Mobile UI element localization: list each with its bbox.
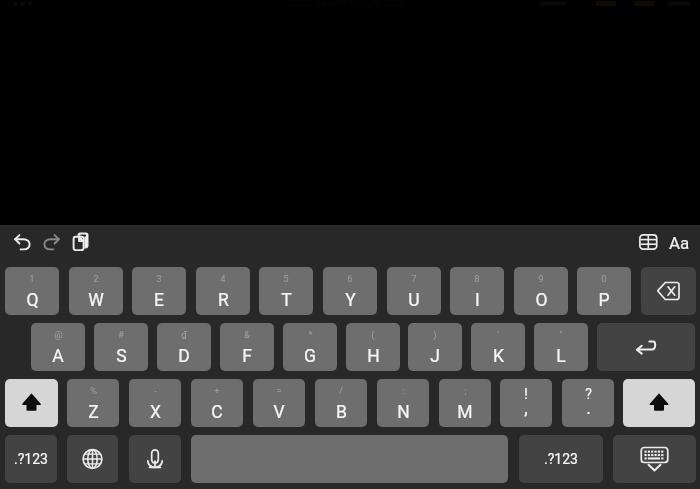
- button[interactable]: 9: [514, 267, 568, 315]
- staticText: %: [90, 385, 97, 396]
- staticText: F: [242, 346, 252, 367]
- button[interactable]: !: [500, 379, 552, 427]
- staticText: &: [244, 329, 250, 340]
- staticText: H: [367, 346, 380, 367]
- staticText: *: [308, 329, 313, 340]
- staticText: .: [586, 398, 591, 419]
- staticText: :: [402, 385, 405, 396]
- staticText: +: [214, 385, 220, 396]
- button[interactable]: .?123: [519, 435, 603, 483]
- staticText: .?123: [544, 451, 578, 467]
- button[interactable]: Backspace: [641, 267, 696, 315]
- button[interactable]: ": [534, 323, 588, 371]
- staticText: 8: [474, 273, 480, 284]
- staticText: Q: [26, 290, 39, 311]
- staticText: !: [524, 386, 528, 402]
- button[interactable]: Redo: [43, 234, 60, 251]
- staticText: V: [273, 402, 285, 423]
- staticText: D: [178, 346, 190, 367]
- button[interactable]: Hide keyboard: [613, 435, 696, 483]
- staticText: W: [88, 290, 104, 311]
- staticText: T: [281, 290, 292, 311]
- staticText: -: [154, 385, 157, 396]
- button[interactable]: ₫: [157, 323, 211, 371]
- button[interactable]: .?123: [5, 435, 57, 483]
- staticText: R: [218, 290, 229, 311]
- button[interactable]: ): [408, 323, 462, 371]
- button[interactable]: 6: [323, 267, 377, 315]
- button[interactable]: ': [471, 323, 525, 371]
- button[interactable]: :: [377, 379, 429, 427]
- staticText: I: [475, 290, 480, 311]
- staticText: ): [433, 329, 437, 340]
- button[interactable]: Shift: [623, 379, 695, 427]
- button[interactable]: &: [220, 323, 274, 371]
- staticText: .?123: [14, 451, 48, 467]
- staticText: L: [556, 346, 566, 367]
- staticText: =: [276, 385, 282, 396]
- staticText: B: [336, 402, 347, 423]
- staticText: 1: [29, 273, 35, 284]
- staticText: ;: [464, 385, 467, 396]
- staticText: X: [150, 402, 161, 423]
- button[interactable]: %: [67, 379, 119, 427]
- staticText: E: [154, 290, 164, 311]
- staticText: 2: [93, 273, 99, 284]
- button[interactable]: /: [315, 379, 367, 427]
- button[interactable]: ?: [562, 379, 614, 427]
- staticText: A: [52, 346, 64, 367]
- staticText: S: [116, 346, 127, 367]
- button[interactable]: (: [346, 323, 400, 371]
- button[interactable]: 3: [132, 267, 186, 315]
- button[interactable]: ;: [439, 379, 491, 427]
- staticText: G: [304, 346, 316, 367]
- button[interactable]: 1: [5, 267, 59, 315]
- staticText: P: [598, 290, 610, 311]
- button[interactable]: Change language: [67, 435, 118, 483]
- staticText: Z: [88, 402, 99, 423]
- button[interactable]: @: [31, 323, 85, 371]
- staticText: C: [211, 402, 223, 423]
- button[interactable]: Voice input: [129, 435, 181, 483]
- button[interactable]: Shift: [5, 379, 58, 427]
- button[interactable]: Undo: [14, 234, 31, 251]
- button[interactable]: 7: [387, 267, 441, 315]
- staticText: (: [371, 329, 375, 340]
- staticText: U: [408, 290, 420, 311]
- staticText: ": [559, 329, 563, 340]
- staticText: O: [535, 290, 548, 311]
- staticText: @: [54, 329, 63, 340]
- button[interactable]: 5: [259, 267, 313, 315]
- button[interactable]: 0: [577, 267, 631, 315]
- staticText: ,: [524, 398, 528, 419]
- button[interactable]: -: [129, 379, 181, 427]
- button[interactable]: 2: [69, 267, 123, 315]
- button[interactable]: Enter: [597, 323, 695, 371]
- staticText: N: [397, 402, 410, 423]
- staticText: 7: [411, 273, 417, 284]
- button[interactable]: 4: [196, 267, 250, 315]
- staticText: K: [493, 346, 504, 367]
- button[interactable]: +: [191, 379, 243, 427]
- staticText: 6: [347, 273, 353, 284]
- button[interactable]: 8: [450, 267, 504, 315]
- button[interactable]: =: [253, 379, 305, 427]
- staticText: J: [430, 346, 440, 367]
- staticText: Aa: [669, 233, 690, 253]
- button[interactable]: *: [283, 323, 337, 371]
- staticText: M: [457, 402, 473, 423]
- staticText: ': [497, 329, 499, 340]
- button[interactable]: Aa: [665, 231, 693, 255]
- staticText: 4: [220, 273, 226, 284]
- button[interactable]: Clipboard: [72, 232, 91, 253]
- staticText: ₫: [181, 329, 187, 340]
- staticText: /: [339, 385, 343, 396]
- staticText: 9: [538, 273, 544, 284]
- staticText: Y: [345, 290, 356, 311]
- staticText: ?: [585, 386, 592, 402]
- staticText: #: [118, 329, 124, 340]
- staticText: 0: [601, 273, 607, 284]
- button[interactable]: #: [94, 323, 148, 371]
- button[interactable]: Table: [639, 234, 659, 252]
